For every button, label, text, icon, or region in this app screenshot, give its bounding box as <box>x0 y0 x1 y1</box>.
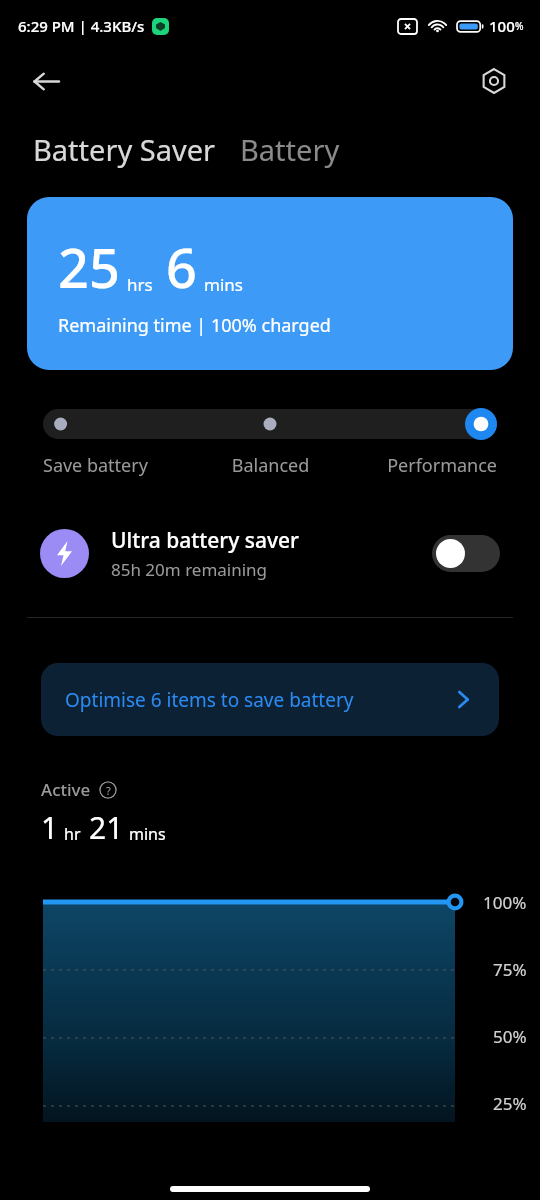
staticText: Save battery <box>43 453 195 478</box>
staticText: mins <box>204 273 243 296</box>
staticText: Active <box>41 778 91 801</box>
button[interactable]: Optimise 6 items to save battery <box>41 663 499 736</box>
button[interactable]: Ultra battery saver <box>40 526 500 581</box>
staticText: 6:29 PM | 4.3KB/s <box>18 16 145 36</box>
staticText: 6 <box>166 230 197 304</box>
staticText: ? <box>106 783 111 798</box>
staticText: 21 <box>89 807 124 848</box>
staticText: hrs <box>127 273 153 296</box>
button[interactable]: Settings <box>472 59 516 103</box>
staticText: mins <box>129 823 166 845</box>
staticText: Performance <box>346 453 497 478</box>
staticText: Remaining time | 100% charged <box>58 313 331 338</box>
button[interactable]: Battery <box>240 130 340 169</box>
staticText: % <box>515 19 524 33</box>
button[interactable]: Help about active time <box>99 781 117 799</box>
staticText: 100 <box>489 16 515 36</box>
staticText: Ultra battery saver <box>111 526 299 555</box>
staticText: Battery <box>240 130 340 169</box>
button[interactable]: Battery Saver <box>33 130 215 169</box>
button[interactable] <box>43 408 497 440</box>
staticText: hr <box>64 823 81 845</box>
staticText: 25% <box>493 1092 527 1115</box>
staticText: 75% <box>493 958 527 981</box>
button[interactable]: Ultra battery saver toggle <box>432 535 500 572</box>
staticText: Battery Saver <box>33 130 215 169</box>
staticText: Balanced <box>195 453 346 478</box>
staticText: 100% <box>483 891 527 914</box>
staticText: 25 <box>58 230 120 304</box>
staticText: 1 <box>41 807 59 848</box>
button[interactable]: Back <box>23 58 69 104</box>
staticText: Optimise 6 items to save battery <box>65 687 354 713</box>
button[interactable]: 25 <box>27 197 513 370</box>
staticText: 50% <box>493 1025 527 1048</box>
staticText: 85h 20m remaining <box>111 558 268 581</box>
